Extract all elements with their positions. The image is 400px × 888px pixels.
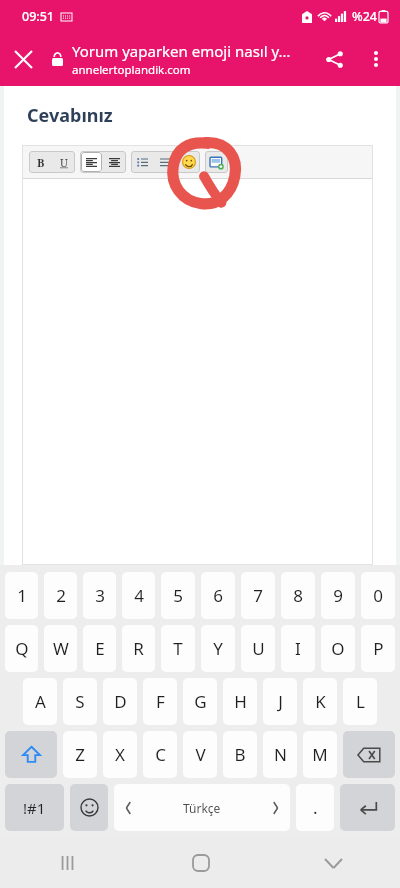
button[interactable]: Underline [52, 151, 75, 173]
staticText: H [234, 690, 247, 713]
staticText: D [114, 690, 127, 713]
button[interactable]: K [303, 678, 337, 725]
button[interactable]: R [122, 625, 155, 672]
button[interactable]: 4 [122, 572, 155, 619]
staticText: F [156, 690, 165, 713]
button[interactable]: Space [114, 784, 290, 831]
staticText: W [53, 637, 69, 660]
staticText: Türkçe [183, 800, 221, 816]
button[interactable]: B [223, 731, 257, 778]
staticText: B [234, 743, 246, 766]
button[interactable]: Numbered list [154, 151, 177, 173]
button[interactable]: Home [134, 838, 267, 888]
staticText: C [155, 743, 166, 766]
button[interactable]: D [103, 678, 137, 725]
button[interactable]: Share [312, 37, 356, 81]
button[interactable]: E [83, 625, 116, 672]
button[interactable]: Recent apps [0, 838, 134, 888]
button[interactable]: Align center [103, 151, 126, 173]
staticText: I [295, 637, 301, 660]
button[interactable]: U [241, 625, 275, 672]
staticText: 8 [293, 584, 303, 607]
staticText: L [356, 690, 365, 713]
staticText: 4 [134, 584, 144, 607]
staticText: K [315, 690, 326, 713]
button[interactable]: 5 [161, 572, 195, 619]
staticText: . [313, 796, 318, 819]
staticText: 5 [173, 584, 183, 607]
staticText: U [60, 155, 68, 170]
staticText: S [75, 690, 85, 713]
button[interactable]: Align left [81, 152, 102, 172]
staticText: 2 [56, 584, 66, 607]
button[interactable]: 0 [361, 572, 395, 619]
button[interactable]: P [361, 625, 395, 672]
staticText: B [37, 155, 45, 170]
button[interactable]: Emoji [70, 784, 108, 831]
staticText: 1 [17, 584, 27, 607]
staticText: P [373, 637, 384, 660]
button[interactable]: 7 [241, 572, 275, 619]
button[interactable]: More options [356, 39, 396, 79]
button[interactable]: G [183, 678, 217, 725]
button[interactable]: Close [0, 36, 46, 82]
staticText: O [331, 637, 345, 660]
staticText: Y [213, 637, 223, 660]
button[interactable]: A [23, 678, 57, 725]
button[interactable]: Bold [29, 151, 52, 173]
button[interactable]: L [343, 678, 377, 725]
button[interactable]: . [296, 784, 334, 831]
button[interactable]: 2 [44, 572, 77, 619]
staticText: 0 [373, 584, 383, 607]
button[interactable]: X [103, 731, 137, 778]
button[interactable]: J [263, 678, 297, 725]
staticText: %24 [352, 8, 377, 25]
button[interactable]: 6 [201, 572, 235, 619]
staticText: U [252, 637, 265, 660]
button[interactable]: T [161, 625, 195, 672]
button[interactable]: Insert image [205, 151, 228, 173]
button[interactable]: O [321, 625, 355, 672]
staticText: N [274, 743, 287, 766]
staticText: T [173, 637, 183, 660]
button[interactable]: Hide keyboard [267, 838, 400, 888]
button[interactable]: I [281, 625, 315, 672]
staticText: 7 [253, 584, 263, 607]
button[interactable]: C [143, 731, 177, 778]
staticText: M [312, 743, 328, 766]
button[interactable]: W [44, 625, 77, 672]
staticText: G [194, 690, 207, 713]
button[interactable]: Y [201, 625, 235, 672]
button[interactable]: N [263, 731, 297, 778]
button[interactable]: Bulleted list [131, 151, 154, 173]
button[interactable]: F [143, 678, 177, 725]
button[interactable]: M [303, 731, 337, 778]
button[interactable]: Symbols [5, 784, 64, 831]
staticText: 6 [213, 584, 223, 607]
staticText: Z [75, 743, 85, 766]
staticText: !#1 [23, 798, 46, 818]
staticText: R [133, 637, 144, 660]
button[interactable]: 3 [83, 572, 116, 619]
staticText: Q [15, 637, 29, 660]
button[interactable]: Q [5, 625, 38, 672]
button[interactable]: S [63, 678, 97, 725]
button[interactable]: Enter [340, 784, 395, 831]
button[interactable]: 8 [281, 572, 315, 619]
button[interactable]: 1 [5, 572, 38, 619]
button[interactable]: Insert emoji [177, 151, 200, 173]
staticText: A [35, 690, 46, 713]
staticText: V [195, 743, 206, 766]
button[interactable]: Shift [5, 731, 57, 778]
staticText: 9 [333, 584, 343, 607]
staticText: Cevabınız [27, 103, 113, 128]
button[interactable]: V [183, 731, 217, 778]
button[interactable] [22, 179, 373, 565]
button[interactable]: Backspace [343, 731, 395, 778]
staticText: 09:51 [22, 8, 55, 25]
button[interactable]: 9 [321, 572, 355, 619]
button[interactable]: H [223, 678, 257, 725]
staticText: E [95, 637, 105, 660]
button[interactable]: Z [63, 731, 97, 778]
staticText: X [115, 743, 125, 766]
